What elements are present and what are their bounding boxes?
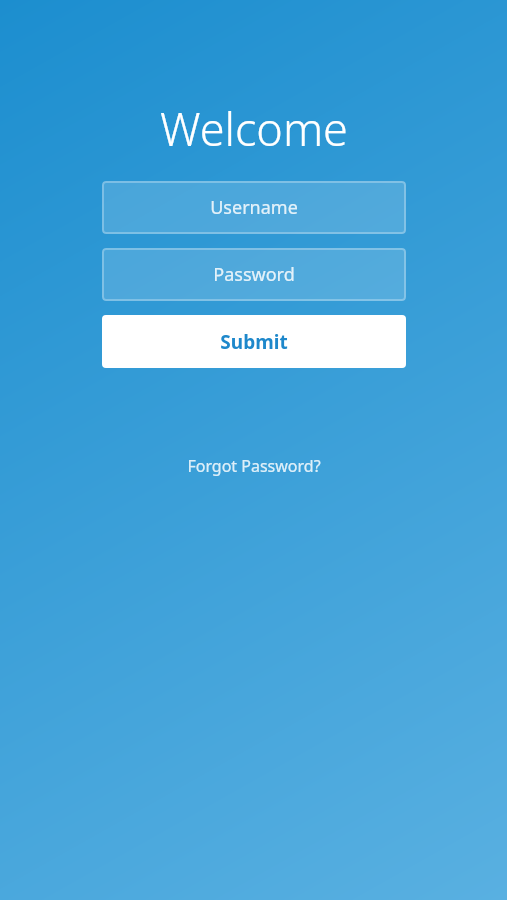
button[interactable]: Forgot Password? bbox=[175, 447, 333, 485]
button[interactable]: Submit bbox=[102, 315, 406, 368]
staticText: Welcome bbox=[160, 98, 348, 159]
button[interactable]: Username bbox=[102, 181, 406, 234]
staticText: Submit bbox=[220, 329, 288, 355]
staticText: Username bbox=[210, 195, 298, 220]
staticText: Password bbox=[213, 262, 295, 287]
button[interactable]: Password bbox=[102, 248, 406, 301]
staticText: Forgot Password? bbox=[187, 455, 321, 477]
